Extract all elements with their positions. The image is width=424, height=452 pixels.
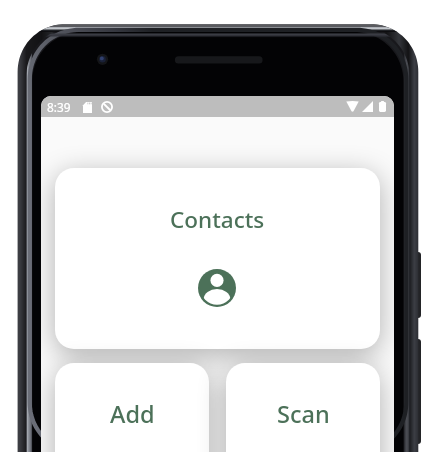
staticText: Add <box>110 398 155 430</box>
button[interactable]: Contacts <box>55 168 380 349</box>
staticText: 8:39 <box>47 99 71 115</box>
button[interactable]: Add <box>55 363 209 452</box>
staticText: Contacts <box>170 204 265 235</box>
staticText: Scan <box>277 398 330 430</box>
button[interactable]: Scan <box>226 363 380 452</box>
